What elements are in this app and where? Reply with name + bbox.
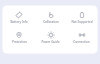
button[interactable]: Power Guide [35,31,66,44]
button[interactable]: Battery Info [3,11,35,24]
button[interactable]: Protection [3,31,35,44]
button[interactable]: Connection [66,31,97,44]
staticText: Battery Info [10,20,28,24]
button[interactable]: Calibration [35,11,66,24]
staticText: Power Guide [41,40,60,44]
button[interactable]: Not Supported [66,11,97,24]
staticText: Not Supported [71,20,93,24]
staticText: Protection [12,40,27,44]
staticText: Calibration [43,20,59,24]
staticText: Connection [73,40,90,44]
